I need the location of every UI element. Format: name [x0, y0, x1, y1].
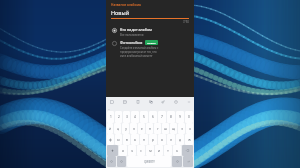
button[interactable]: р [149, 134, 157, 145]
staticText: д [179, 138, 181, 142]
button[interactable]: й [107, 123, 113, 134]
staticText: м [149, 149, 152, 153]
button[interactable]: Sticker [121, 98, 128, 105]
staticText: л [170, 138, 172, 142]
staticText: ф [109, 138, 112, 142]
staticText: с [140, 149, 142, 153]
button[interactable]: е [138, 123, 145, 134]
staticText: :: [108, 107, 110, 110]
button[interactable]: Кто видит альбом [111, 27, 189, 37]
staticText: п [143, 138, 145, 142]
staticText: 6 [152, 115, 154, 119]
staticText: 5 [143, 115, 145, 119]
button[interactable]: GIF [147, 98, 154, 105]
button[interactable]: 7 [158, 111, 166, 123]
button[interactable]: т [164, 145, 172, 156]
staticText: и [158, 149, 160, 153]
button[interactable]: 1 [107, 111, 114, 123]
staticText: Все пользователи [120, 33, 144, 37]
button[interactable]: ш [162, 123, 169, 134]
button[interactable]: 9 [176, 111, 184, 123]
staticText: щ [172, 127, 175, 131]
staticText: н [149, 127, 151, 131]
staticText: з [181, 127, 183, 131]
button[interactable]: д [176, 134, 184, 145]
staticText: 8 [170, 115, 172, 119]
button[interactable]: х [186, 123, 193, 134]
button[interactable]: я [119, 145, 127, 156]
button[interactable]: у [122, 123, 129, 134]
staticText: 0 [188, 115, 190, 119]
button[interactable]: к [130, 123, 137, 134]
button[interactable]: 0 [185, 111, 193, 123]
staticText: у [125, 127, 127, 131]
staticText: 9 [179, 115, 181, 119]
staticText: ч [131, 149, 133, 153]
button[interactable]: ф [107, 134, 114, 145]
staticText: Фотоальбом [120, 40, 143, 45]
button[interactable]: QWERTY [127, 156, 171, 167]
button[interactable]: Backspace [182, 145, 193, 156]
button[interactable]: Comma [172, 156, 182, 167]
button[interactable]: н [146, 123, 153, 134]
button[interactable]: ч [128, 145, 136, 156]
staticText: Создайте отличный альбом с [120, 46, 159, 50]
staticText: т [167, 149, 169, 153]
button[interactable]: з [178, 123, 185, 134]
button[interactable]: с [137, 145, 145, 156]
button[interactable]: в [123, 134, 130, 145]
staticText: о [161, 138, 163, 142]
staticText: 7/50 [183, 20, 189, 24]
button[interactable]: Emoji [117, 156, 126, 167]
button[interactable]: Theme [134, 98, 141, 105]
staticText: НОВОЕ [147, 41, 156, 44]
staticText: ь [176, 149, 178, 153]
button[interactable]: More [185, 98, 192, 105]
staticText: а [134, 138, 136, 142]
staticText: й [109, 127, 111, 131]
staticText: р [152, 138, 154, 142]
button[interactable]: щ [170, 123, 177, 134]
button[interactable]: п [140, 134, 148, 145]
button[interactable]: Emoji [172, 98, 179, 105]
button[interactable]: Symbols [107, 156, 116, 167]
button[interactable]: 5 [140, 111, 148, 123]
button[interactable]: Translate [159, 98, 166, 105]
staticText: Название альбома [111, 3, 141, 7]
staticText: к [133, 127, 135, 131]
staticText: в [126, 138, 128, 142]
staticText: 2 [118, 115, 120, 119]
button[interactable]: и [155, 145, 163, 156]
button[interactable]: ж [185, 134, 193, 145]
button[interactable]: ы [115, 134, 122, 145]
staticText: 3 [126, 115, 128, 119]
button[interactable]: Shift [107, 145, 118, 156]
button[interactable]: 2 [115, 111, 122, 123]
staticText: предпросмотром от тех, кто [120, 50, 157, 54]
button[interactable]: Фотоальбом [111, 40, 189, 58]
button[interactable]: Новый [111, 9, 189, 16]
staticText: ы [117, 138, 120, 142]
button[interactable]: 8 [167, 111, 175, 123]
button[interactable]: 3 [123, 111, 130, 123]
button[interactable]: м [146, 145, 154, 156]
staticText: QWERTY [144, 160, 155, 164]
button[interactable]: о [158, 134, 166, 145]
button[interactable]: ц [114, 123, 121, 134]
button[interactable]: ь [173, 145, 181, 156]
staticText: х [189, 127, 191, 131]
staticText: г [157, 127, 159, 131]
staticText: 4 [134, 115, 136, 119]
button[interactable]: 4 [131, 111, 139, 123]
staticText: е [141, 127, 143, 131]
staticText: Новый [111, 9, 130, 16]
staticText: ц [117, 127, 119, 131]
staticText: я [122, 149, 124, 153]
staticText: 7 [161, 115, 163, 119]
button[interactable]: г [154, 123, 161, 134]
button[interactable]: а [131, 134, 139, 145]
button[interactable]: Clipboard [108, 98, 115, 105]
button[interactable]: 6 [149, 111, 157, 123]
button[interactable]: Enter [183, 156, 193, 167]
button[interactable]: л [167, 134, 175, 145]
